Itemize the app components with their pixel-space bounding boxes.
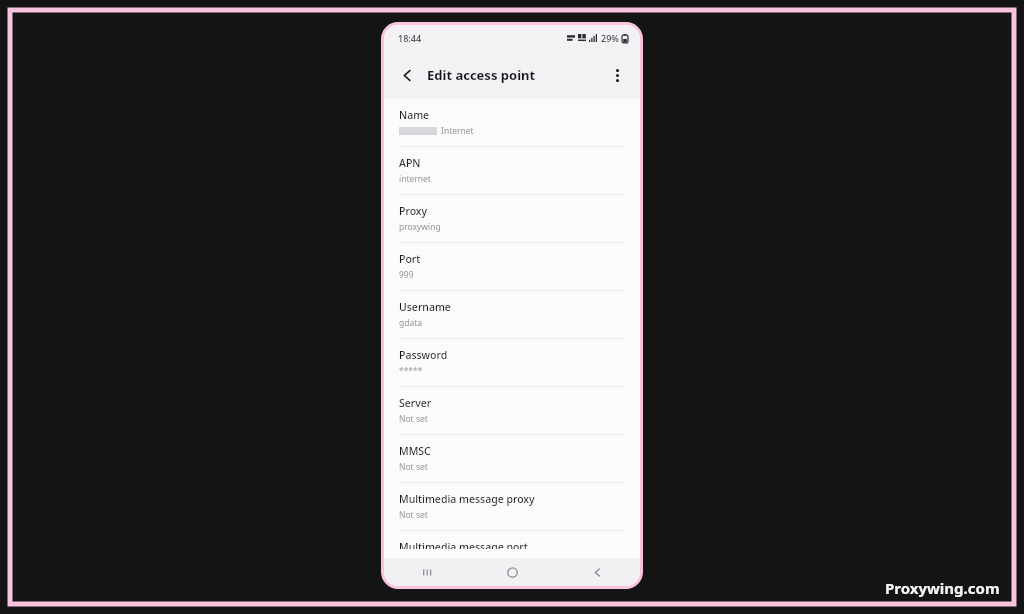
button[interactable]: Recents [384, 558, 470, 586]
staticText: APN [399, 156, 421, 170]
staticText: Proxywing.com [885, 578, 1000, 598]
staticText: proxywing [399, 221, 441, 233]
staticText: internet [399, 173, 431, 185]
staticText: Multimedia message port [399, 540, 528, 549]
button[interactable]: Home [470, 558, 555, 586]
button[interactable]: Multimedia message port [384, 531, 640, 558]
button[interactable]: Username [384, 291, 640, 338]
staticText: Not set [399, 509, 428, 521]
button[interactable]: Name [384, 99, 640, 146]
staticText: Username [399, 300, 451, 314]
staticText: Not set [399, 461, 428, 473]
staticText: MMSC [399, 444, 431, 458]
staticText: 29% [601, 32, 619, 44]
button[interactable]: Multimedia message proxy [384, 483, 640, 530]
staticText: Server [399, 396, 432, 410]
staticText: Internet [441, 125, 474, 137]
button[interactable]: Port [384, 243, 640, 290]
staticText: Multimedia message proxy [399, 492, 535, 506]
staticText: Name [399, 108, 430, 122]
button[interactable]: Proxy [384, 195, 640, 242]
staticText: Password [399, 348, 448, 362]
button[interactable]: APN [384, 147, 640, 194]
staticText: 18:44 [398, 32, 422, 44]
staticText: Edit access point [427, 66, 536, 84]
button[interactable]: Password [384, 339, 640, 386]
button[interactable]: Back [555, 558, 640, 586]
button[interactable]: MMSC [384, 435, 640, 482]
staticText: Proxy [399, 204, 428, 218]
button[interactable]: More options [604, 62, 630, 88]
staticText: gdata [399, 317, 423, 329]
staticText: Port [399, 252, 421, 266]
button[interactable]: Server [384, 387, 640, 434]
staticText: 999 [399, 269, 414, 281]
button[interactable]: Back [394, 62, 420, 88]
staticText: ***** [399, 365, 423, 377]
staticText: Not set [399, 413, 428, 425]
